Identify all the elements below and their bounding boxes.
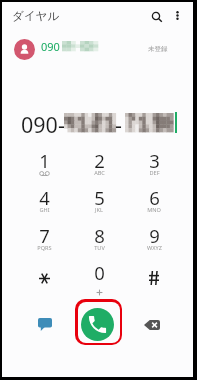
button[interactable]: star [18, 262, 70, 299]
button[interactable]: Call [81, 308, 114, 341]
staticText: 3 [149, 148, 160, 173]
button[interactable]: 8 [73, 225, 125, 262]
staticText: 5 [94, 185, 105, 210]
staticText: GHI [39, 206, 50, 214]
staticText: JKL [95, 206, 103, 214]
staticText: 4 [39, 185, 50, 210]
button[interactable]: 6 [128, 187, 180, 224]
staticText: PQRS [37, 244, 52, 252]
button[interactable]: Backspace [134, 307, 170, 343]
staticText: 9 [149, 223, 160, 248]
button[interactable]: pound [128, 262, 180, 299]
staticText: 1 [39, 148, 50, 173]
staticText: MNO [147, 206, 161, 214]
staticText: TUV [94, 244, 105, 252]
staticText: 6 [149, 185, 160, 210]
staticText: 090 [41, 39, 60, 54]
button[interactable]: 090 [2, 35, 193, 67]
button[interactable]: 7 [18, 225, 70, 262]
staticText: - [115, 110, 122, 139]
staticText: 090- [21, 110, 65, 139]
button[interactable]: Message [27, 306, 63, 342]
staticText: 2 [94, 148, 105, 173]
button[interactable]: 0 [73, 262, 125, 299]
staticText: ダイヤル [12, 9, 60, 23]
button[interactable]: More options [165, 3, 189, 27]
staticText: WXYZ [147, 244, 162, 252]
staticText: ABC [94, 169, 105, 177]
staticText: 7 [39, 223, 50, 248]
button[interactable]: Search [144, 4, 169, 29]
staticText: DEF [149, 169, 160, 177]
staticText: 8 [94, 223, 105, 248]
staticText: 0 [94, 260, 105, 285]
staticText: 未登録 [148, 45, 168, 53]
button[interactable]: 9 [128, 225, 180, 262]
button[interactable]: 3 [128, 150, 180, 187]
button[interactable]: 5 [73, 187, 125, 224]
button[interactable]: 1 [18, 150, 70, 187]
button[interactable]: 2 [73, 150, 125, 187]
button[interactable]: 4 [18, 187, 70, 224]
